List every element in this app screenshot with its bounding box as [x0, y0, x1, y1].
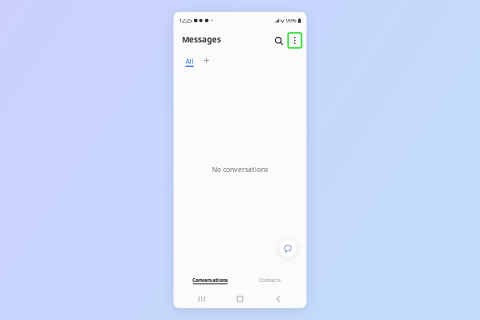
staticText: No conversations — [212, 165, 268, 174]
staticText: 99% — [286, 17, 297, 24]
button[interactable]: Search — [274, 32, 285, 46]
staticText: All — [185, 57, 193, 65]
button[interactable]: Back — [259, 293, 297, 308]
staticText: Contacts — [259, 276, 281, 283]
button[interactable]: Add filter — [200, 50, 212, 71]
button[interactable]: Home — [221, 293, 259, 308]
button[interactable]: Start new conversation — [279, 240, 296, 257]
staticText: 12:25 — [179, 17, 192, 24]
button[interactable]: All — [182, 50, 197, 71]
button[interactable]: Conversations — [173, 275, 240, 293]
staticText: Messages — [182, 34, 221, 45]
button[interactable]: Contacts — [240, 275, 306, 293]
button[interactable]: More options — [289, 32, 302, 47]
staticText: Conversations — [192, 276, 228, 283]
button[interactable]: Recent apps — [182, 293, 221, 308]
